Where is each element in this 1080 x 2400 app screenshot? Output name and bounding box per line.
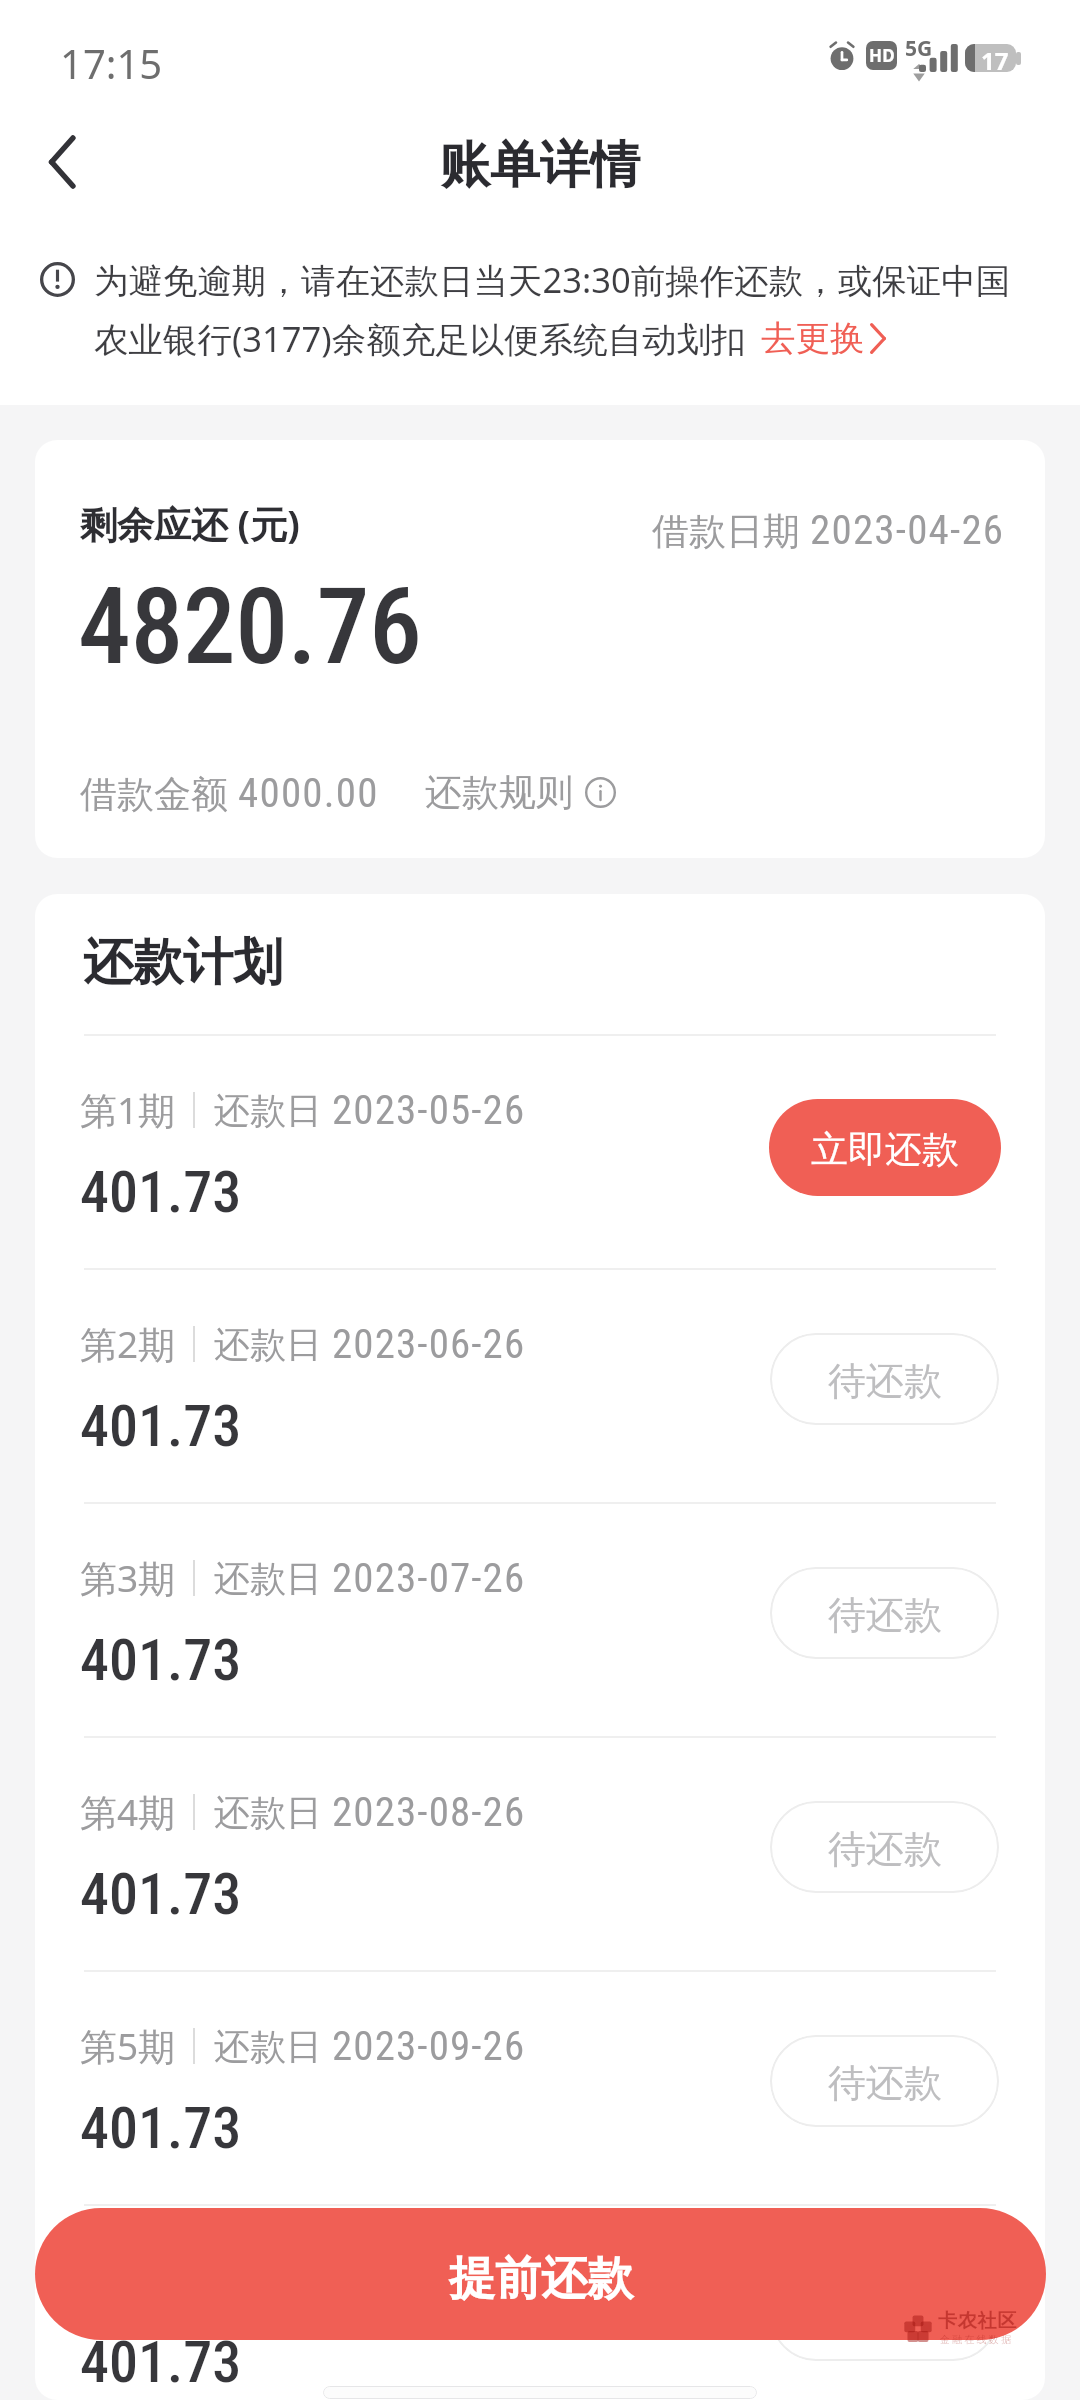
staticText: 401.73	[80, 1158, 242, 1226]
staticText: 2023-08-26	[332, 1788, 526, 1836]
button[interactable]: 去更换 Change repayment bank card	[761, 317, 886, 360]
staticText: 待还款	[828, 2059, 942, 2107]
staticText: 4000.00	[238, 769, 379, 817]
staticText: 还款日	[214, 1553, 332, 1602]
staticText: 2023-05-26	[332, 1086, 526, 1134]
staticText: 4820.76	[78, 565, 422, 689]
staticText: 第1期	[80, 1084, 176, 1135]
staticText: 卡农社区	[938, 2309, 1018, 2333]
button[interactable]: 待还款	[770, 1567, 999, 1659]
staticText: 2023-10-26	[332, 2256, 526, 2304]
staticText: 401.73	[80, 1860, 242, 1928]
button[interactable]: 立即还款	[769, 1099, 1001, 1196]
button[interactable]	[35, 1504, 1045, 1736]
staticText: 401.73	[80, 2328, 242, 2396]
button[interactable]: 待还款	[770, 2035, 999, 2127]
staticText: 第4期	[80, 1786, 176, 1837]
staticText: 17	[981, 44, 1009, 72]
staticText: 还款日	[214, 1319, 332, 1368]
button[interactable]: 提前还款	[35, 2208, 1046, 2340]
staticText: 2023-04-26	[810, 506, 1005, 554]
staticText: 借款金额	[80, 767, 238, 818]
button[interactable]	[35, 1738, 1045, 1970]
staticText: 待还款	[828, 1591, 942, 1639]
staticText: 金融在线数据	[940, 2333, 1014, 2346]
staticText: 还款日	[214, 2021, 332, 2070]
staticText: 待还款	[828, 1357, 942, 1405]
staticText: 立即还款	[811, 1126, 959, 1173]
staticText: 401.73	[80, 1392, 242, 1460]
button[interactable]: 待还款	[770, 1333, 999, 1425]
staticText: 第2期	[80, 1318, 176, 1369]
button[interactable]	[35, 2206, 1045, 2400]
staticText: 为避免逾期，请在还款日当天23:30前操作还款，或保证中国	[94, 256, 1011, 303]
staticText: 账单详情	[440, 134, 640, 197]
staticText: 待还款	[828, 1825, 942, 1873]
staticText: 剩余应还 (元)	[80, 498, 300, 549]
staticText: 去更换	[761, 317, 865, 360]
staticText: 第5期	[80, 2020, 176, 2071]
staticText: 17:15	[60, 36, 163, 90]
staticText: 2023-09-26	[332, 2022, 526, 2070]
button[interactable]: 待还款	[770, 1801, 999, 1893]
staticText: 2023-06-26	[332, 1320, 526, 1368]
staticText: 401.73	[80, 2094, 242, 2162]
staticText: 借款日期	[652, 504, 810, 555]
staticText: 还款计划	[83, 931, 283, 994]
staticText: 还款日	[214, 1085, 332, 1134]
staticText: 农业银行(3177)余额充足以便系统自动划扣	[94, 315, 746, 362]
staticText: 5G	[905, 34, 933, 63]
staticText: 401.73	[80, 1626, 242, 1694]
staticText: 2023-07-26	[332, 1554, 526, 1602]
button[interactable]	[35, 1036, 1045, 1268]
button[interactable]: 待还款	[770, 2269, 999, 2361]
button[interactable]: 还款规则 Repayment rules	[425, 769, 616, 816]
button[interactable]	[35, 1270, 1045, 1502]
staticText: HD	[869, 44, 895, 67]
button[interactable]: Back	[20, 120, 104, 204]
staticText: 待还款	[828, 2293, 942, 2341]
staticText: 第3期	[80, 1552, 176, 1603]
staticText: 还款日	[214, 1787, 332, 1836]
button[interactable]	[35, 1972, 1045, 2204]
staticText: 还款规则	[425, 769, 573, 816]
staticText: 提前还款	[449, 2250, 633, 2308]
